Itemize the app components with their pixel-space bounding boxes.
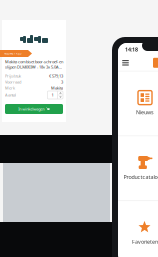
staticText: Nieuws [136, 109, 154, 116]
button[interactable]: Nieuws [118, 72, 158, 136]
staticText: 14:18 [125, 46, 138, 53]
staticText: 1 [51, 92, 53, 98]
button[interactable]: Winkelwagen [151, 55, 158, 71]
staticText: Makita combiset boor-schroef- en slijpen… [5, 59, 63, 70]
staticText: Merk [5, 85, 15, 91]
staticText: 3 [61, 79, 63, 85]
staticText: Prijs/stuk [5, 73, 21, 79]
staticText: NIEUWE PRIJS [4, 52, 21, 55]
button[interactable]: Minder [58, 95, 63, 99]
button[interactable]: Meer [58, 91, 63, 95]
staticText: Voorraad [5, 79, 21, 85]
staticText: € 579,13 [49, 73, 63, 79]
staticText: Aantal [5, 92, 16, 98]
button[interactable]: Favorieten [118, 201, 158, 257]
button[interactable]: In winkelwagen [5, 104, 63, 114]
staticText: Favorieten [132, 238, 158, 245]
button[interactable]: Productcatalogus [118, 136, 158, 200]
staticText: In winkelwagen [18, 106, 44, 112]
button[interactable]: Menu [119, 55, 131, 71]
staticText: Makita [51, 85, 63, 91]
staticText: Productcatalogus [123, 173, 158, 180]
